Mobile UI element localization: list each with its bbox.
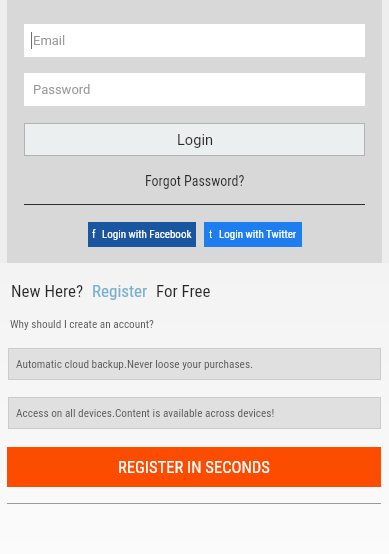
button[interactable]: Login (24, 123, 365, 156)
staticText: New Here? (11, 281, 84, 301)
staticText: Email (33, 33, 66, 48)
staticText: Login (177, 131, 213, 148)
staticText: t (209, 228, 213, 241)
staticText: Why should I create an account? (10, 318, 154, 331)
button[interactable]: Email (24, 24, 365, 57)
staticText: f (92, 228, 96, 241)
staticText: Automatic cloud backup.Never loose your … (16, 358, 254, 371)
staticText: Login with Twitter (219, 228, 297, 241)
button[interactable]: Password (24, 73, 365, 106)
button[interactable]: f (88, 222, 196, 247)
staticText: REGISTER IN SECONDS (118, 458, 270, 477)
button[interactable]: Forgot Password? (145, 173, 245, 189)
staticText: For Free (156, 281, 211, 301)
staticText: Login with Facebook (102, 228, 192, 241)
staticText: Access on all devices.Content is availab… (16, 407, 275, 420)
button[interactable]: Register (92, 281, 148, 301)
button[interactable]: REGISTER IN SECONDS (7, 447, 381, 487)
staticText: Password (33, 82, 91, 97)
button[interactable]: t (204, 222, 302, 247)
